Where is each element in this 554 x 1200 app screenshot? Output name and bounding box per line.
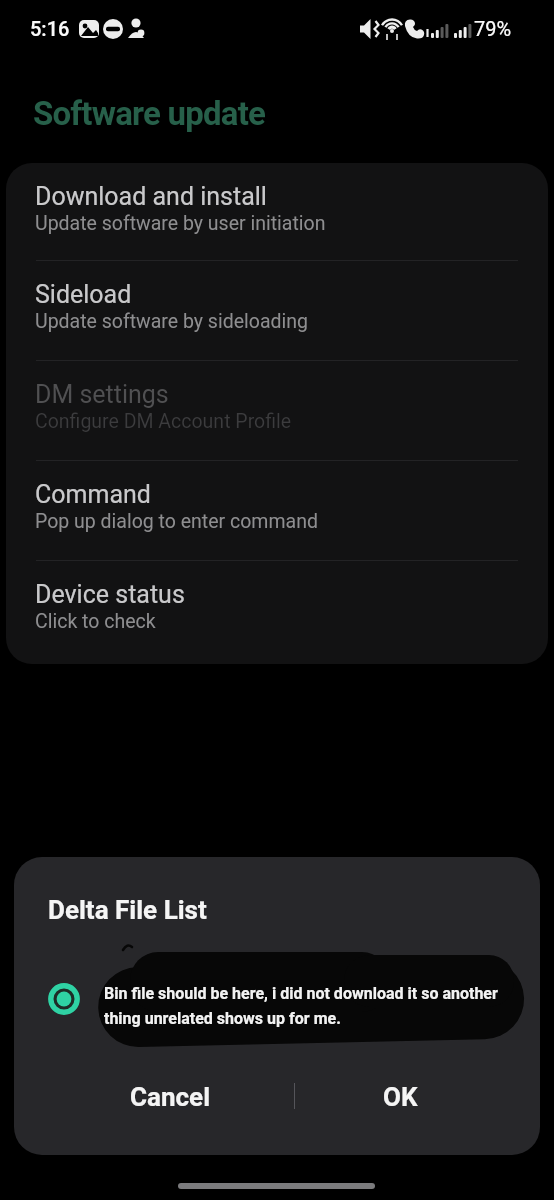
staticText: Click to check	[35, 610, 156, 633]
staticText: Delta File List	[48, 895, 207, 925]
button[interactable]: Device status	[6, 561, 548, 664]
staticText: Configure DM Account Profile	[35, 410, 292, 433]
staticText: thing unrelated shows up for me.	[104, 1009, 341, 1028]
staticText: Update software by sideloading	[35, 310, 308, 333]
button[interactable]: Sideload	[6, 261, 548, 360]
staticText: Device status	[35, 580, 185, 609]
staticText: DM settings	[35, 380, 169, 409]
staticText: Update software by user initiation	[35, 212, 326, 235]
staticText: Sideload	[35, 280, 132, 309]
button[interactable]: Download and install	[6, 163, 548, 260]
button[interactable]: DM settings	[6, 361, 548, 460]
staticText: Bin file should be here, i did not downl…	[104, 984, 498, 1003]
staticText: 5:16	[30, 17, 70, 40]
staticText: Software update	[33, 94, 266, 133]
staticText: Cancel	[130, 1082, 211, 1112]
button[interactable]: OK	[310, 1069, 490, 1125]
button[interactable]: Cancel	[80, 1069, 260, 1125]
staticText: Command	[35, 480, 151, 509]
staticText: Download and install	[35, 182, 267, 211]
button[interactable]: Command	[6, 461, 548, 560]
staticText: Pop up dialog to enter command	[35, 510, 318, 533]
staticText: 79%	[474, 17, 512, 40]
staticText: OK	[383, 1082, 418, 1112]
